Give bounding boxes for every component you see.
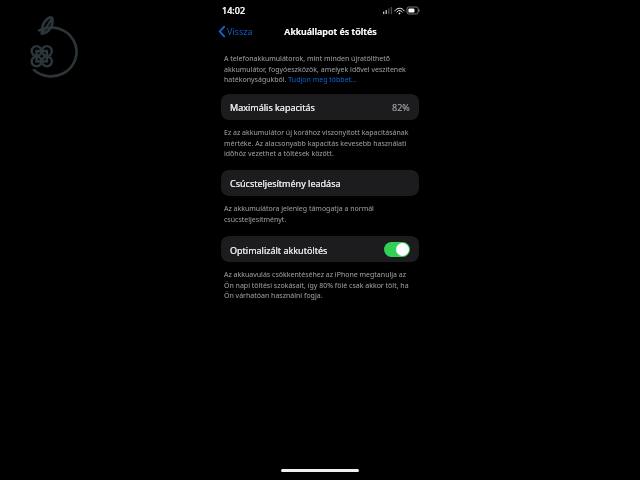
staticText: Az akkumulátora jelenleg támogatja a nor… — [224, 204, 416, 224]
button[interactable]: Optimalizált akkutöltés — [221, 236, 419, 262]
button[interactable]: Maximális kapacitás — [221, 94, 419, 120]
button[interactable]: Csúcsteljesítmény leadása — [221, 170, 419, 196]
staticText: 82% — [392, 101, 410, 113]
staticText: Vissza — [227, 25, 253, 37]
button[interactable]: Vissza — [212, 23, 257, 39]
staticText: Az akkuavulás csökkentéséhez az iPhone m… — [224, 270, 416, 300]
staticText: Optimalizált akkutöltés — [230, 244, 384, 256]
staticText: Maximális kapacitás — [230, 101, 392, 113]
staticText: Ez az akkumulátor új korához viszonyítot… — [224, 128, 416, 158]
staticText: Csúcsteljesítmény leadása — [230, 177, 410, 189]
staticText: Akkuállapot és töltés — [284, 25, 377, 37]
button[interactable]: Optimalizált akkutöltés be- és kikapcsol… — [384, 242, 410, 257]
staticText: A telefonakkumulátorok, mint minden újra… — [224, 54, 416, 84]
staticText: 14:02 — [222, 4, 246, 16]
